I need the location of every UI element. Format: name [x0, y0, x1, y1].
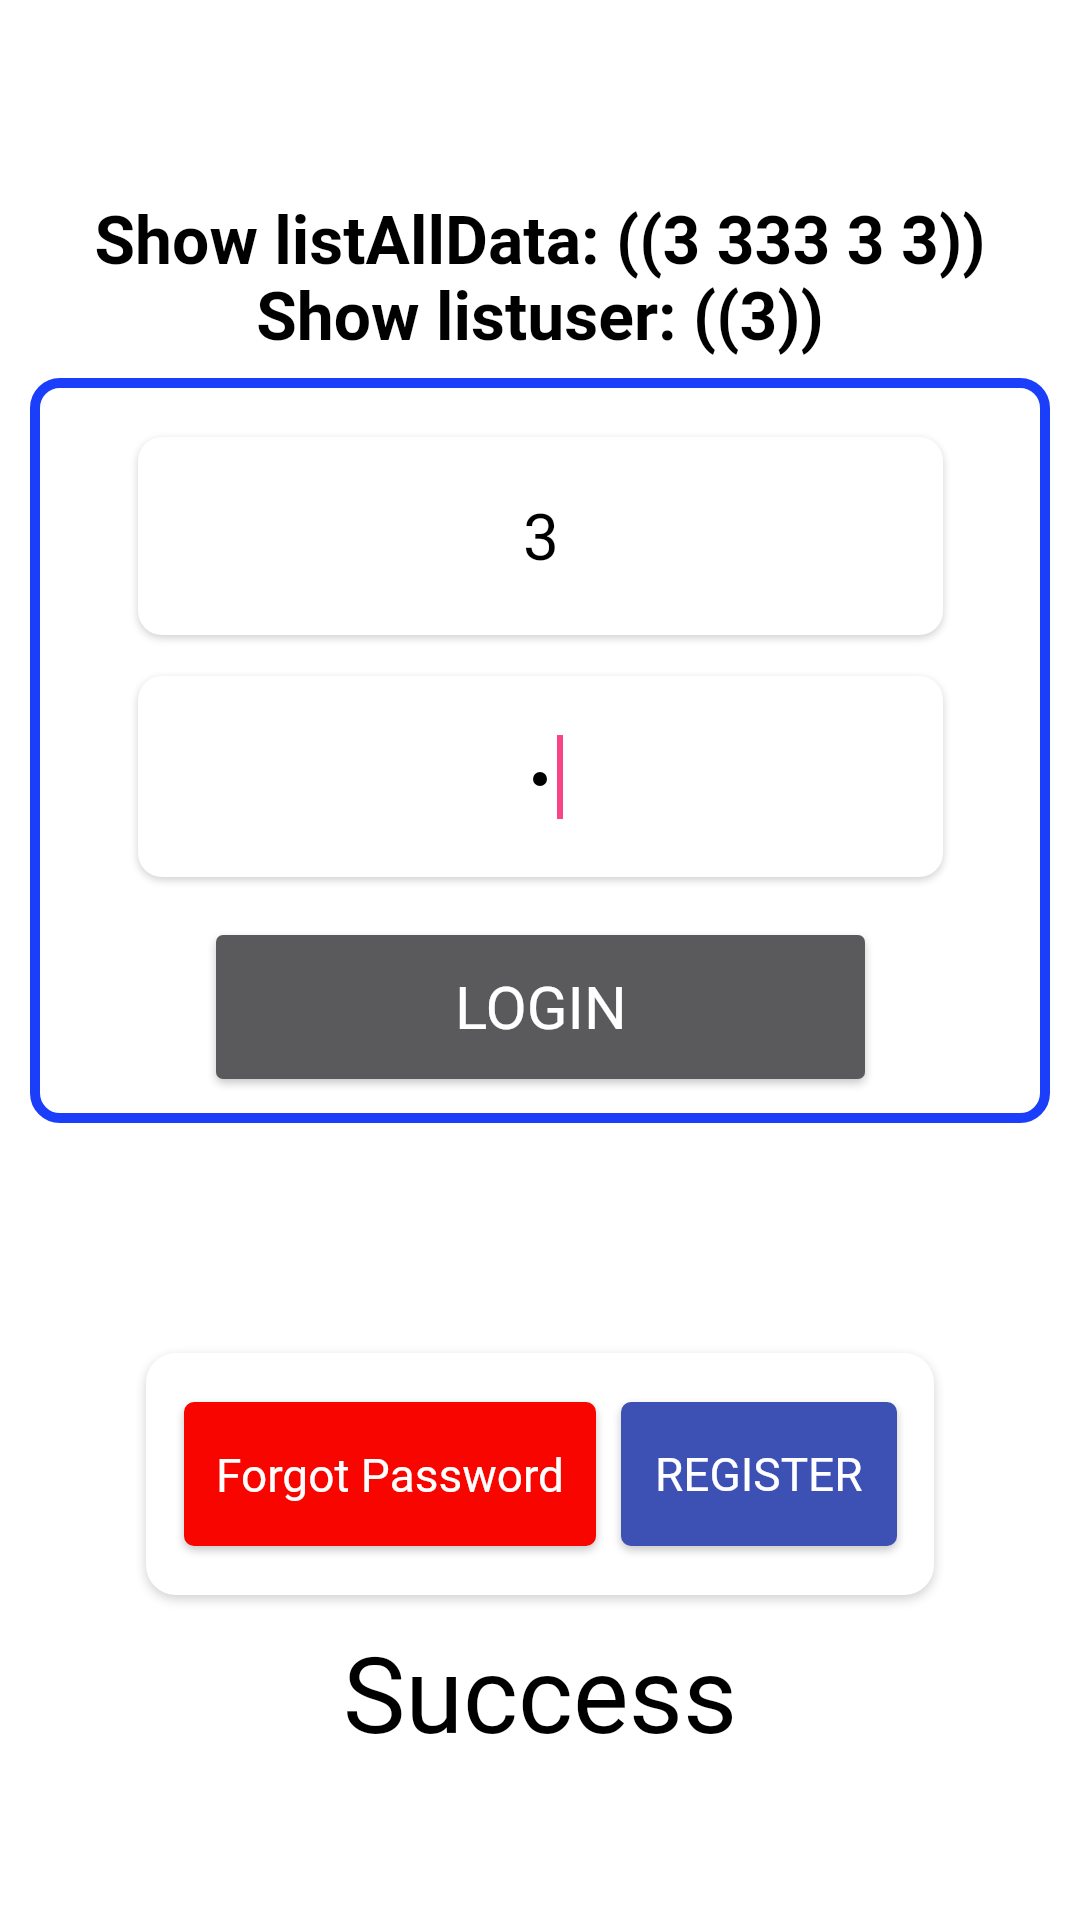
staticText: Success — [0, 1636, 1080, 1759]
button[interactable]: REGISTER — [621, 1402, 897, 1546]
button[interactable]: Username — [138, 437, 943, 635]
staticText: REGISTER — [655, 1448, 863, 1502]
staticText: Forgot Password — [216, 1449, 565, 1503]
button[interactable]: Forgot Password — [184, 1402, 596, 1546]
button[interactable]: Password — [138, 676, 943, 877]
staticText: 3 — [523, 501, 559, 576]
button[interactable]: LOGIN — [216, 935, 865, 1079]
staticText: Show listAllData: ((3 333 3 3)) Show lis… — [0, 203, 1080, 356]
staticText: LOGIN — [455, 973, 627, 1043]
